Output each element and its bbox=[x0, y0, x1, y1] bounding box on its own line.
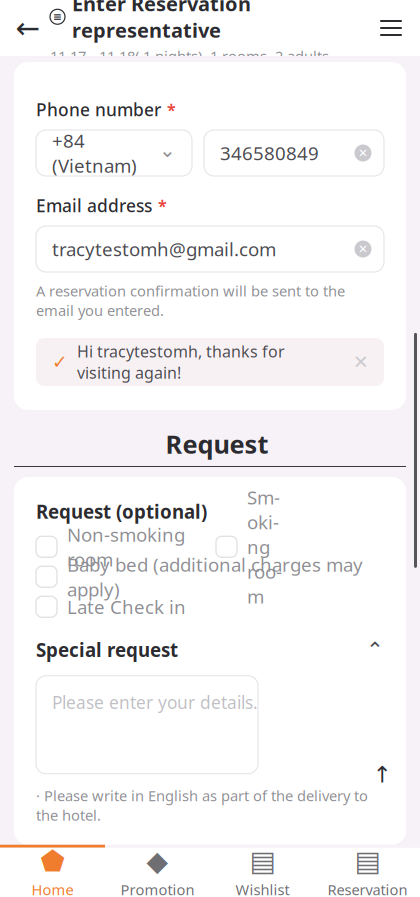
staticText: Request bbox=[165, 427, 268, 461]
staticText: tracytestomh@gmail.com bbox=[52, 237, 276, 261]
staticText: Special request bbox=[36, 637, 178, 662]
staticText: Please enter your details. bbox=[52, 691, 258, 714]
staticText: Phone number bbox=[36, 98, 161, 121]
button[interactable]: ▤ bbox=[315, 848, 420, 897]
button[interactable]: Non-smoking room bbox=[36, 532, 216, 562]
staticText: * bbox=[158, 195, 167, 216]
staticText: ≡ bbox=[53, 11, 62, 23]
staticText: Late Check in bbox=[67, 594, 186, 619]
staticText: Reservation bbox=[327, 880, 407, 897]
staticText: Enter Reservation representative bbox=[72, 0, 251, 43]
staticText: ↑ bbox=[372, 762, 391, 788]
staticText: 346580849 bbox=[220, 141, 319, 165]
staticText: Request (optional) bbox=[36, 499, 207, 524]
staticText: Baby bed (additional charges may apply) bbox=[67, 552, 363, 602]
staticText: ✕ bbox=[353, 351, 369, 373]
button[interactable]: ⬟ bbox=[0, 848, 105, 897]
staticText: Email address bbox=[36, 194, 152, 217]
button[interactable]: Dismiss bbox=[346, 347, 376, 377]
button[interactable]: Late Check in bbox=[36, 592, 384, 622]
button[interactable]: Clear bbox=[348, 234, 378, 264]
staticText: · Please write in English as part of the… bbox=[36, 786, 368, 825]
staticText: Hi tracytestomh, thanks for visiting aga… bbox=[77, 341, 285, 383]
button[interactable]: Special request bbox=[36, 634, 384, 666]
staticText: ✕ bbox=[358, 242, 368, 256]
staticText: ⌄ bbox=[159, 139, 176, 161]
staticText: 11.17 - 11.18( 1 nights), 1 rooms, 2 adu… bbox=[50, 46, 329, 66]
button[interactable]: Clear bbox=[348, 138, 378, 168]
staticText: ▤ bbox=[354, 845, 380, 877]
button[interactable]: Menu bbox=[368, 5, 414, 51]
button[interactable]: Back bbox=[6, 6, 50, 50]
staticText: ▤ bbox=[249, 845, 275, 877]
staticText: ✓ bbox=[52, 351, 68, 373]
button[interactable]: Scroll to top bbox=[360, 753, 404, 797]
staticText: ← bbox=[15, 11, 40, 45]
staticText: Smoking room bbox=[247, 485, 282, 609]
staticText: ⬟ bbox=[40, 845, 64, 877]
staticText: Non-smoking room bbox=[67, 522, 185, 572]
staticText: Promotion bbox=[120, 880, 194, 897]
staticText: Wishlist bbox=[235, 880, 289, 897]
staticText: ✕ bbox=[358, 146, 368, 160]
button[interactable]: ◆ bbox=[105, 848, 210, 897]
staticText: ⌃ bbox=[366, 638, 384, 662]
staticText: ◆ bbox=[146, 845, 168, 877]
staticText: Home bbox=[31, 880, 73, 897]
staticText: A reservation confirmation will be sent … bbox=[36, 281, 345, 320]
staticText: +84 (Vietnam) bbox=[52, 128, 137, 178]
staticText: * bbox=[167, 99, 176, 120]
button[interactable]: Smoking room bbox=[216, 532, 300, 562]
button[interactable]: Baby bed (additional charges may apply) bbox=[36, 562, 384, 592]
button[interactable]: ▤ bbox=[210, 848, 315, 897]
